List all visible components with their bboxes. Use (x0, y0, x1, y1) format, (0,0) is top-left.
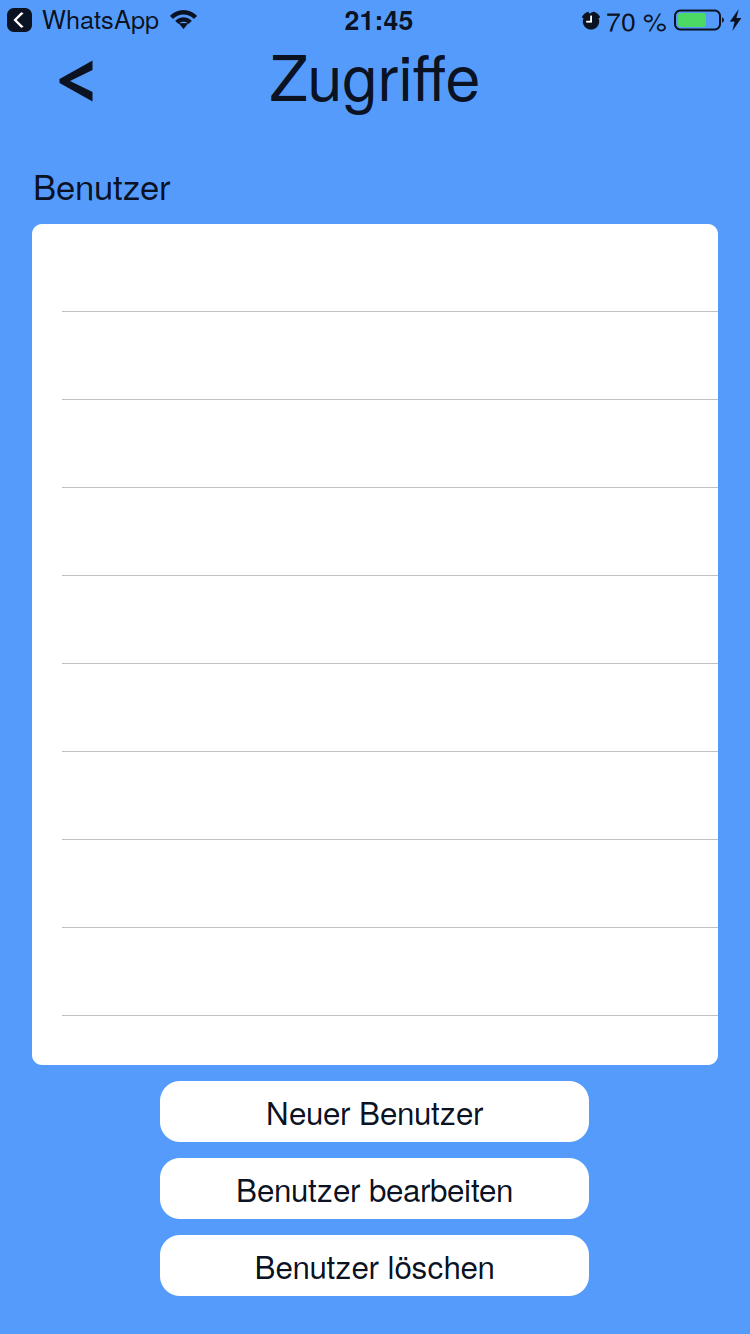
button[interactable]: Benutzer löschen (160, 1235, 589, 1296)
staticText: Benutzer löschen (254, 1243, 494, 1288)
button[interactable]: Back (41, 49, 111, 113)
button[interactable] (32, 752, 718, 840)
staticText: Benutzer (33, 160, 171, 210)
staticText: Zugriffe (269, 29, 480, 119)
button[interactable]: Neuer Benutzer (160, 1081, 589, 1142)
button[interactable] (32, 576, 718, 664)
staticText: WhatsApp (42, 0, 159, 36)
button[interactable] (32, 664, 718, 752)
button[interactable]: Back to WhatsApp (0, 0, 159, 40)
button[interactable] (32, 928, 718, 1016)
button[interactable] (32, 312, 718, 400)
staticText: 70 % (606, 1, 667, 39)
button[interactable] (32, 400, 718, 488)
button[interactable] (32, 488, 718, 576)
button[interactable] (32, 224, 718, 312)
staticText: 21:45 (344, 0, 413, 38)
button[interactable]: Benutzer bearbeiten (160, 1158, 589, 1219)
staticText: Neuer Benutzer (266, 1089, 483, 1134)
staticText: Benutzer bearbeiten (236, 1166, 513, 1211)
button[interactable] (32, 840, 718, 928)
